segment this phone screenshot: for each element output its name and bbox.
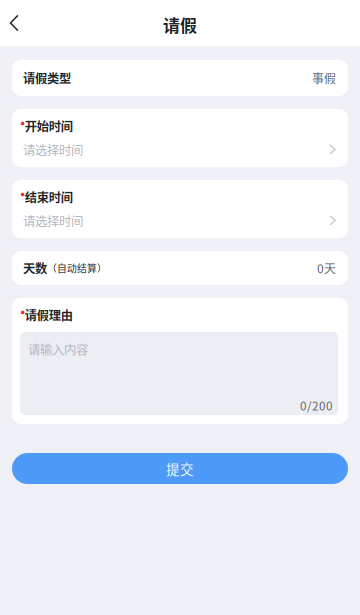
staticText: 请选择时间	[23, 211, 83, 229]
button[interactable]: 请假类型	[12, 60, 348, 96]
staticText: 请假类型	[23, 69, 71, 87]
staticText: 结束时间	[25, 188, 73, 206]
staticText: 请选择时间	[23, 140, 83, 158]
staticText: 0天	[317, 259, 336, 277]
staticText: 提交	[166, 459, 194, 478]
staticText: 请输入内容	[28, 340, 88, 358]
staticText: 天数	[23, 259, 47, 277]
staticText: 请假	[163, 12, 197, 37]
button[interactable]: 开始时间	[12, 109, 348, 167]
staticText: （自动结算）	[47, 261, 107, 275]
button[interactable]: 提交	[12, 453, 348, 484]
button[interactable]: 结束时间	[12, 180, 348, 238]
staticText: 0/200	[300, 397, 333, 414]
button[interactable]: Back	[0, 1, 40, 45]
staticText: 开始时间	[25, 117, 73, 135]
button[interactable]: 请输入内容	[20, 332, 338, 415]
staticText: 请假理由	[25, 306, 73, 324]
staticText: 事假	[312, 69, 336, 87]
